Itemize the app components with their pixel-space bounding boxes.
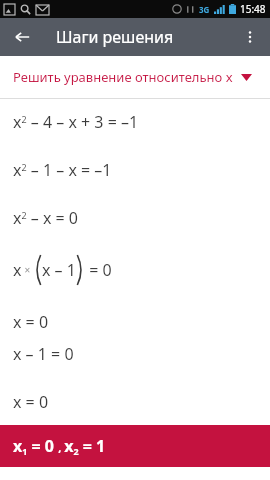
staticText: Шаги решения: [56, 26, 174, 48]
staticText: = 0: [85, 259, 112, 281]
staticText: 3G: [199, 4, 210, 15]
staticText: ×: [22, 263, 33, 277]
staticText: x – 1 = 0: [13, 343, 74, 365]
staticText: x – 1: [42, 259, 76, 281]
button[interactable]: Ещё: [234, 21, 266, 53]
button[interactable]: Назад: [6, 21, 38, 53]
staticText: Решить уравнение относительно x: [13, 68, 233, 86]
button[interactable]: Решить уравнение относительно x: [0, 56, 270, 98]
button[interactable]: x1 = 0 , x2 = 1: [0, 425, 270, 467]
staticText: x2 – 1 – x = –1: [13, 159, 112, 181]
staticText: x = 0: [13, 391, 49, 413]
staticText: x = 0: [13, 311, 49, 333]
staticText: x2 – 4 – x + 3 = –1: [13, 111, 139, 133]
staticText: x1 = 0 , x2 = 1: [13, 435, 106, 458]
staticText: x2 – x = 0: [13, 207, 79, 229]
staticText: 15:48: [240, 2, 266, 16]
staticText: x: [13, 259, 22, 281]
